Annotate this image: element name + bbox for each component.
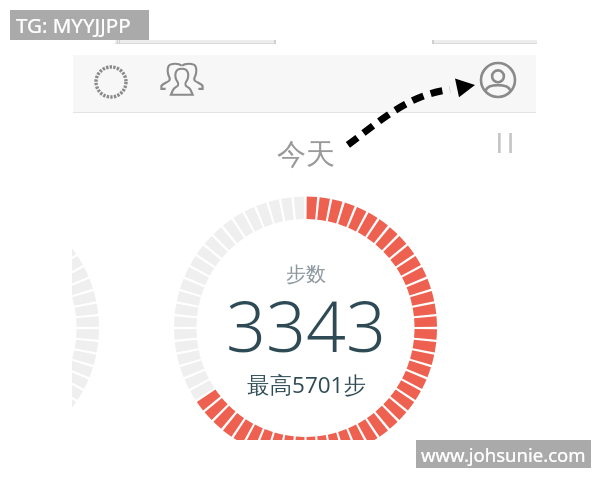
button[interactable]: Steps [82, 53, 139, 110]
staticText: TG: MYYJJPP [16, 11, 131, 39]
staticText: 3343 [226, 277, 386, 372]
button[interactable]: Friends [156, 53, 208, 105]
staticText: 今天 [277, 136, 335, 173]
staticText: 步数 [286, 262, 326, 287]
staticText: 最高5701步 [247, 369, 366, 400]
staticText: www.johsunie.com [421, 442, 586, 467]
button[interactable]: Pause [487, 125, 523, 161]
button[interactable]: Profile [470, 52, 526, 108]
